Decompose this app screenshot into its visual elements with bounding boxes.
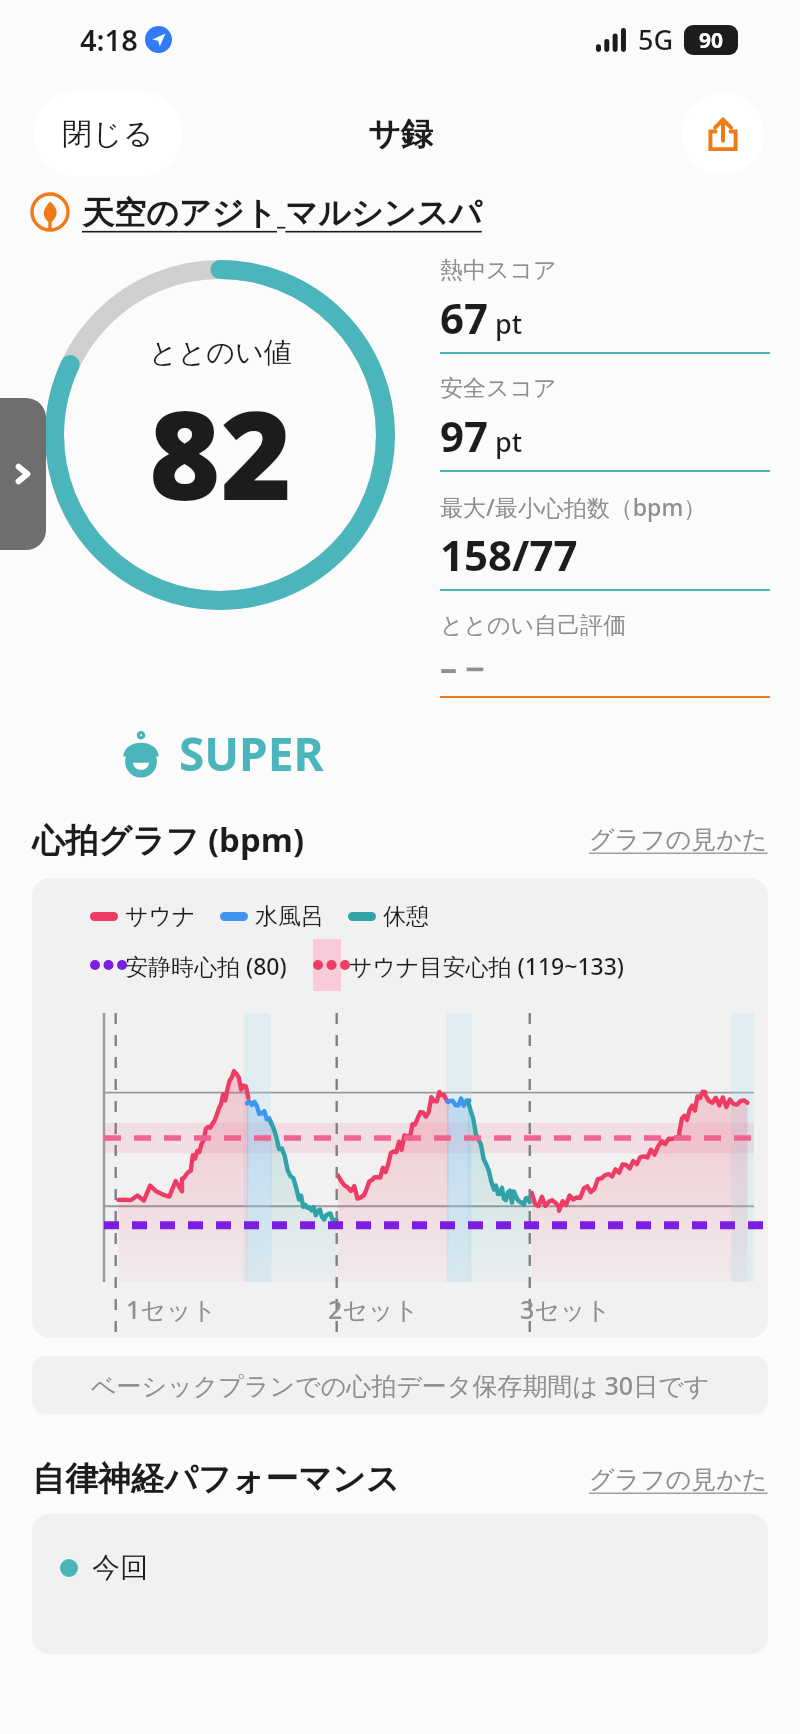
staticText: ととのい値 <box>149 335 292 370</box>
button[interactable]: Next session <box>0 398 46 550</box>
staticText: サウナ目安心拍 (119~133) <box>349 950 625 981</box>
staticText: 心拍グラフ (bpm) <box>32 817 305 862</box>
staticText: 97 <box>440 407 489 464</box>
staticText: 水風呂 <box>255 902 324 931</box>
staticText: 90 <box>699 26 724 55</box>
staticText: 安静時心拍 (80) <box>125 950 287 981</box>
staticText: 5G <box>638 21 674 58</box>
button[interactable]: グラフの見かた <box>589 824 768 855</box>
staticText: pt <box>495 305 523 342</box>
staticText: 67 <box>440 289 489 346</box>
staticText: 安全スコア <box>440 374 557 403</box>
button[interactable]: Share <box>682 93 764 175</box>
staticText: サウナ <box>125 902 196 931</box>
staticText: ベーシックプランでの心拍データ保存期間は 30日です <box>91 1368 710 1402</box>
staticText: 4:18 <box>80 20 138 59</box>
staticText: サ録 <box>368 114 433 154</box>
staticText: 天空のアジト マルシンスパ <box>82 190 482 234</box>
staticText: 自律神経パフォーマンス <box>32 1458 400 1500</box>
staticText: 3セット <box>520 1292 612 1326</box>
staticText: SUPER <box>179 722 324 785</box>
staticText: 最大/最小心拍数（bpm） <box>440 491 707 522</box>
button[interactable]: 閉じる <box>34 91 182 177</box>
staticText: 休憩 <box>383 902 429 931</box>
staticText: pt <box>495 423 523 460</box>
staticText: 2セット <box>328 1292 420 1326</box>
staticText: 158/77 <box>440 526 578 583</box>
staticText: 閉じる <box>62 115 154 153</box>
staticText: グラフの見かた <box>589 1464 768 1495</box>
staticText: –－ <box>440 644 491 690</box>
staticText: ととのい自己評価 <box>440 611 627 640</box>
button[interactable]: SUPER <box>0 722 440 785</box>
staticText: 82 <box>149 370 292 536</box>
button[interactable]: グラフの見かた <box>589 1464 768 1495</box>
staticText: グラフの見かた <box>589 824 768 855</box>
staticText: 熱中スコア <box>440 256 557 285</box>
staticText: 1セット <box>126 1292 218 1326</box>
staticText: 今回 <box>92 1550 148 1585</box>
button[interactable]: 天空のアジト マルシンスパ <box>30 190 776 234</box>
